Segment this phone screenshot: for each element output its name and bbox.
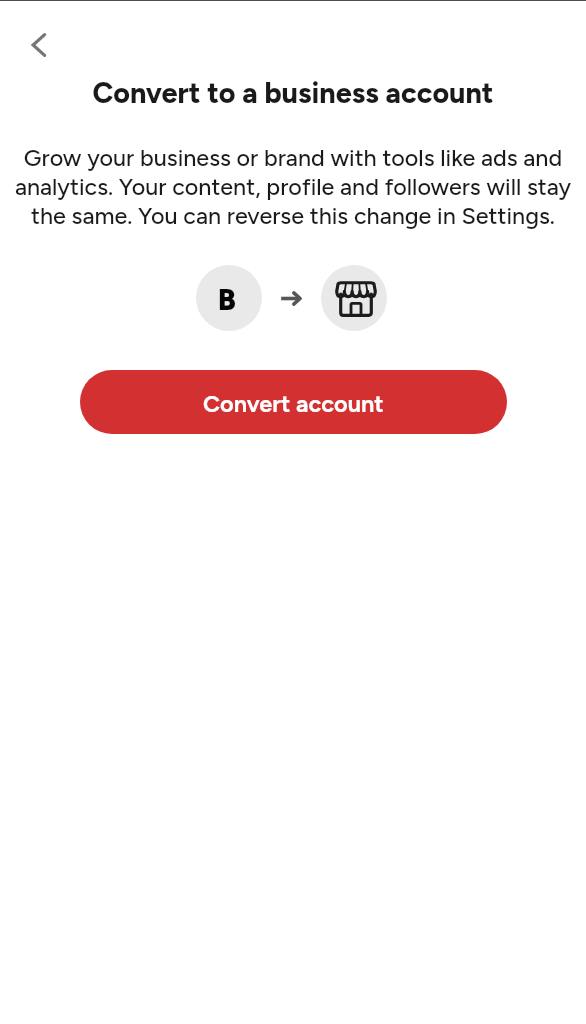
button[interactable]: Convert account [80,370,507,434]
staticText: Convert to a business account [0,76,586,110]
staticText: Grow your business or brand with tools l… [7,144,579,230]
button[interactable]: Back [15,21,63,69]
staticText: B [218,282,236,317]
staticText: Convert account [203,390,384,418]
